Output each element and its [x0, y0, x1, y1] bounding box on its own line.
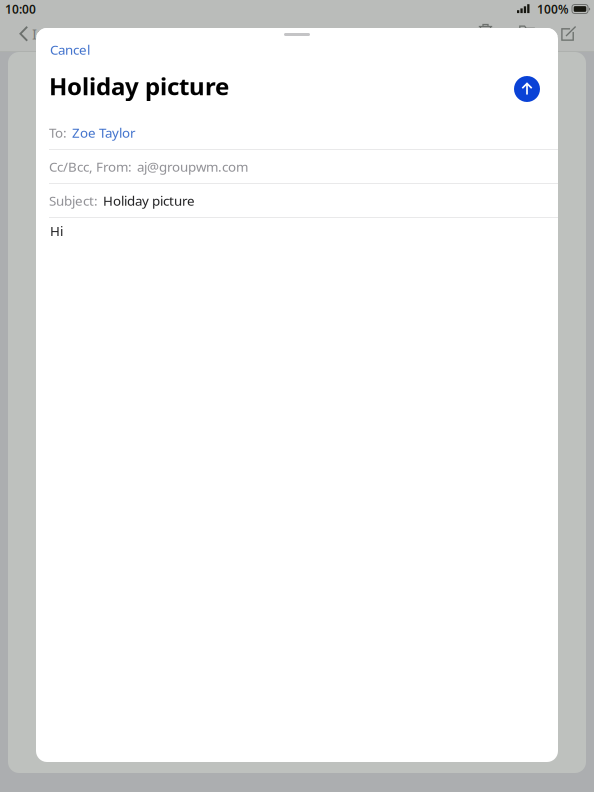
staticText: Hi [50, 222, 63, 240]
staticText: Cancel [50, 41, 90, 58]
staticText: Zoe Taylor [72, 124, 136, 141]
staticText: To: [49, 124, 67, 141]
staticText: Holiday picture [49, 70, 229, 102]
staticText: Cc/Bcc, From: [49, 158, 132, 175]
staticText: 10:00 [5, 1, 36, 17]
staticText: Holiday picture [103, 192, 195, 209]
button[interactable]: Compose [561, 20, 577, 42]
staticText: Inbox [32, 24, 72, 43]
button[interactable]: Send [514, 70, 540, 102]
staticText: Subject: [49, 192, 98, 209]
button[interactable]: Cancel [36, 37, 104, 62]
button[interactable]: Inbox [19, 18, 72, 43]
staticText: 100% [537, 1, 569, 17]
staticText: aj@groupwm.com [137, 158, 248, 175]
button[interactable]: Delete [478, 23, 493, 38]
button[interactable]: Move to folder [519, 24, 535, 38]
